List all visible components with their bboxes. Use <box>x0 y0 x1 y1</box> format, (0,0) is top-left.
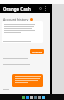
button[interactable]: Account history <box>3 17 33 22</box>
staticText: Orange Cash <box>3 6 31 12</box>
staticText: Continue <box>32 50 43 53</box>
staticText: Account history <box>3 17 29 22</box>
button[interactable]: Search <box>38 6 43 11</box>
button[interactable] <box>2 21 43 43</box>
button[interactable]: More options <box>43 6 48 11</box>
button[interactable] <box>12 74 43 87</box>
button[interactable]: Continue <box>30 49 44 54</box>
